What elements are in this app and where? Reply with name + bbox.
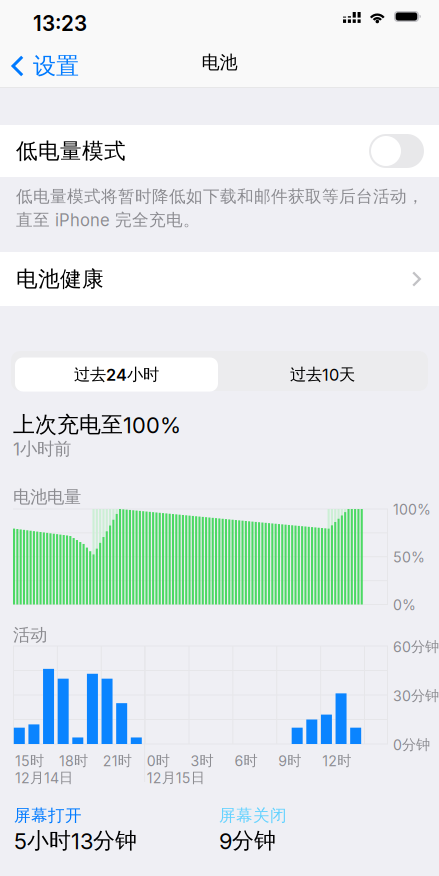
staticText: 直至 iPhone 完全充电。 <box>16 209 200 230</box>
button[interactable]: 电池健康 <box>0 252 439 306</box>
button[interactable]: 低电量模式 <box>0 125 439 177</box>
staticText: 12时 <box>322 752 351 770</box>
staticText: 12月15日 <box>147 769 205 787</box>
staticText: 屏幕关闭 <box>219 805 287 826</box>
staticText: 60分钟 <box>393 638 439 656</box>
button[interactable]: 过去24小时 <box>15 357 218 391</box>
staticText: 过去24小时 <box>74 364 159 385</box>
staticText: 0时 <box>147 752 170 770</box>
staticText: 5小时13分钟 <box>14 827 137 854</box>
staticText: 低电量模式将暂时降低如下载和邮件获取等后台活动， <box>16 186 424 207</box>
staticText: 9分钟 <box>219 827 276 854</box>
staticText: 3时 <box>190 752 213 770</box>
staticText: 100% <box>393 501 431 518</box>
staticText: 12月14日 <box>15 769 73 787</box>
staticText: 电池电量 <box>13 486 81 508</box>
staticText: 21时 <box>103 752 132 770</box>
button[interactable]: 过去10天 <box>221 357 424 391</box>
staticText: 电池 <box>201 51 237 74</box>
staticText: 0分钟 <box>393 736 430 754</box>
staticText: 6时 <box>234 752 257 770</box>
staticText: 低电量模式 <box>16 137 126 165</box>
button[interactable]: 设置 <box>0 44 89 88</box>
staticText: 屏幕打开 <box>14 805 82 826</box>
staticText: 电池健康 <box>16 265 104 293</box>
staticText: 9时 <box>278 752 301 770</box>
staticText: 50% <box>393 549 425 566</box>
staticText: 设置 <box>33 51 79 81</box>
staticText: 过去10天 <box>290 364 355 385</box>
staticText: 0% <box>393 596 416 614</box>
staticText: 活动 <box>13 624 47 646</box>
staticText: 1小时前 <box>13 438 71 460</box>
staticText: 15时 <box>15 752 44 770</box>
staticText: 13:23 <box>33 11 87 36</box>
staticText: 18时 <box>59 752 88 770</box>
staticText: 上次充电至100% <box>13 411 181 438</box>
staticText: 30分钟 <box>393 687 439 705</box>
